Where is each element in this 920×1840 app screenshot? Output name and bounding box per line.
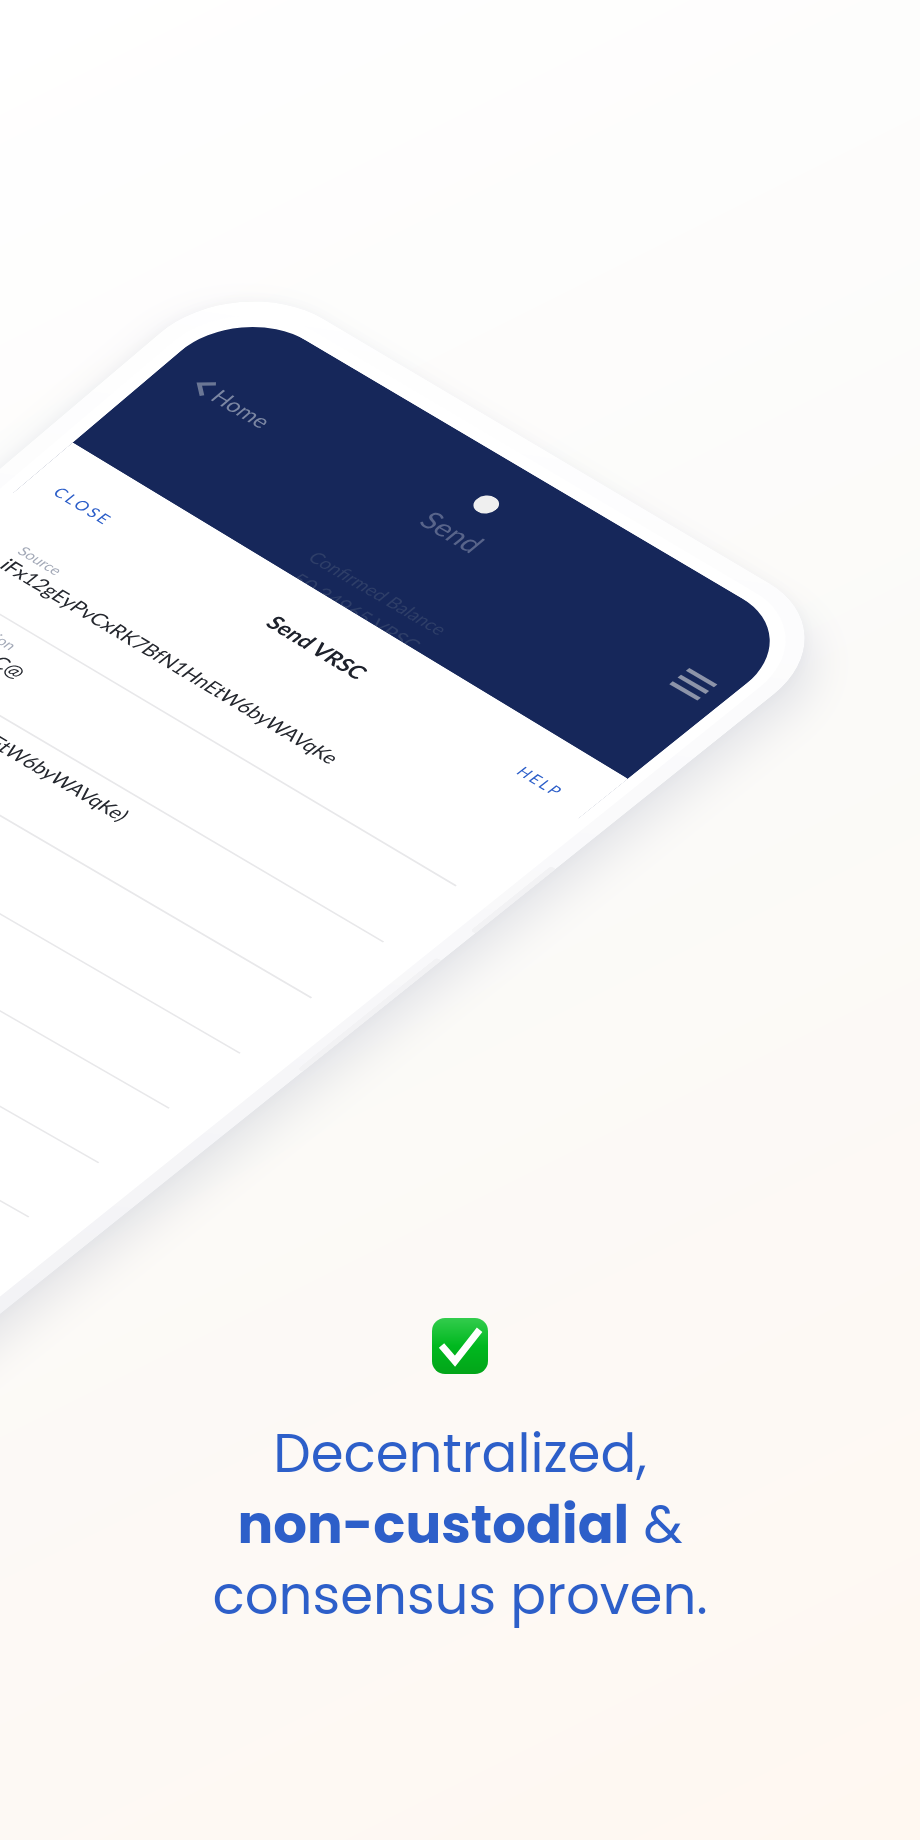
staticText: Decentralized, non-custodial & consensus… xyxy=(0,1416,920,1633)
staticText: Destination xyxy=(0,602,23,653)
button[interactable] xyxy=(0,748,271,1122)
staticText: HELP xyxy=(512,763,570,800)
button[interactable]: Destination xyxy=(0,569,487,956)
button[interactable]: (CxRK7BfN1HnEtW6byWAVqKe) xyxy=(0,629,415,1012)
staticText: Confirmed Balance xyxy=(304,547,453,638)
button[interactable]: Source xyxy=(0,509,559,900)
button[interactable]: HELP xyxy=(485,746,607,824)
staticText: Source xyxy=(14,543,68,578)
staticText: CLOSE xyxy=(48,483,119,529)
staticText: Home xyxy=(206,385,278,432)
staticText: Send VRSC xyxy=(259,611,376,684)
button[interactable] xyxy=(0,689,343,1067)
button[interactable] xyxy=(0,806,200,1176)
button[interactable]: Verified xyxy=(432,1318,488,1374)
button[interactable] xyxy=(0,922,59,1284)
staticText: 50.34965 VRSC xyxy=(285,569,427,655)
staticText: iFx12gEyPvCxRK7BfN1HnEtW6byWAVqKe xyxy=(0,554,351,768)
button[interactable]: Menu xyxy=(664,664,723,704)
staticText: test.VRSC@ xyxy=(0,613,34,683)
button[interactable]: CLOSE xyxy=(16,462,146,547)
staticText: Send xyxy=(413,505,493,558)
staticText: (CxRK7BfN1HnEtW6byWAVqKe) xyxy=(0,661,140,825)
button[interactable]: Home xyxy=(179,368,284,436)
button[interactable] xyxy=(0,864,129,1230)
